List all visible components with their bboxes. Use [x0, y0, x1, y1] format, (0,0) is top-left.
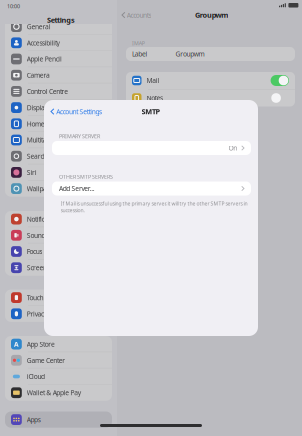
button[interactable]: Search [5, 148, 112, 164]
staticText: Account Settings [56, 107, 102, 116]
button[interactable]: Touch ID & Passcode [5, 289, 112, 306]
button[interactable]: Camera [5, 67, 112, 83]
button[interactable]: On [52, 141, 251, 155]
staticText: Label [132, 49, 148, 59]
staticText: App Store [27, 340, 55, 349]
staticText: Apps [27, 415, 41, 424]
staticText: A [14, 340, 19, 349]
button[interactable]: Account Settings [51, 107, 102, 116]
button[interactable]: Multitasking & Gestures [5, 132, 112, 148]
button[interactable]: Accessibility [5, 35, 112, 51]
staticText: Notes [146, 93, 163, 103]
staticText: On [229, 143, 237, 153]
staticText: OTHER SMTP SERVERS [59, 173, 113, 180]
staticText: PRIMARY SERVER [59, 132, 100, 140]
button[interactable]: Sounds [5, 227, 112, 243]
staticText: Display & Brightness [27, 103, 85, 112]
button[interactable]: Display & Brightness [5, 99, 112, 116]
button[interactable]: Wallet & Apple Pay [5, 385, 112, 401]
staticText: Control Centre [27, 87, 68, 96]
button[interactable]: Label [126, 47, 295, 61]
staticText: Notifications [27, 215, 62, 224]
staticText: Apple Pencil [27, 54, 62, 64]
staticText: Camera [27, 71, 50, 80]
button[interactable]: Control Centre [5, 83, 112, 99]
staticText: General [27, 22, 51, 31]
staticText: Accounts [127, 10, 151, 20]
button[interactable]: A [5, 336, 112, 352]
staticText: Mail [146, 76, 159, 85]
staticText: iCloud [27, 372, 45, 381]
staticText: 10:00 [7, 2, 20, 10]
staticText: Groupwm [176, 49, 204, 59]
staticText: Home Screen [27, 119, 66, 128]
button[interactable]: Home Screen [5, 116, 112, 132]
button[interactable]: Wallpaper [5, 180, 112, 197]
staticText: Focus [27, 247, 42, 256]
staticText: Wallet & Apple Pay [27, 388, 81, 397]
button[interactable]: Apps [5, 411, 112, 428]
staticText: Search [27, 152, 47, 161]
staticText: Multitasking & Gestures [27, 135, 95, 145]
staticText: IMAP [132, 39, 145, 47]
staticText: If Mail is unsuccessful using the primar… [60, 200, 247, 214]
button[interactable]: Privacy & Security [5, 306, 112, 322]
staticText: Groupwm [195, 10, 228, 20]
staticText: Wallpaper [27, 184, 57, 193]
staticText: Touch ID & Passcode [27, 293, 85, 302]
button[interactable]: iCloud [5, 368, 112, 385]
staticText: Sounds [27, 231, 48, 240]
button[interactable]: Screen Time [5, 260, 112, 276]
button[interactable]: General [5, 18, 112, 35]
staticText: Siri [27, 168, 37, 177]
button[interactable]: Notes [271, 92, 289, 103]
staticText: Settings [47, 15, 75, 25]
button[interactable]: Siri [5, 164, 112, 180]
staticText: Privacy & Security [27, 309, 77, 318]
button[interactable]: Apple Pencil [5, 51, 112, 67]
button[interactable]: Notifications [5, 211, 112, 227]
button[interactable]: Mail [271, 75, 289, 86]
staticText: Accessibility [27, 38, 60, 47]
button[interactable]: Accounts [122, 10, 151, 20]
staticText: Screen Time [27, 263, 63, 272]
button[interactable]: Focus [5, 243, 112, 260]
staticText: Game Center [27, 356, 65, 365]
button[interactable]: Add Server... [52, 181, 251, 195]
staticText: SMTP [141, 106, 161, 116]
button[interactable]: Game Center [5, 352, 112, 368]
staticText: Add Server... [59, 184, 95, 193]
